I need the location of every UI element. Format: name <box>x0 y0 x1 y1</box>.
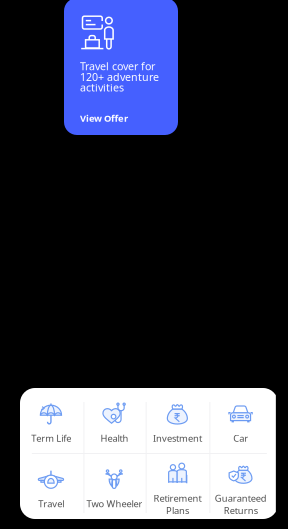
staticText: 120+ adventure <box>80 70 159 84</box>
staticText: Term Life <box>31 432 71 444</box>
staticText: Travel cover for <box>80 59 155 73</box>
button[interactable]: Guaranteed Returns <box>209 453 272 519</box>
button[interactable]: View Offer <box>80 106 138 130</box>
staticText: Health <box>100 432 128 444</box>
staticText: Travel <box>38 497 64 510</box>
button[interactable]: Retirement Plans <box>146 453 209 519</box>
button[interactable]: Travel <box>19 453 82 519</box>
staticText: View Offer <box>80 112 128 124</box>
button[interactable]: Investment <box>146 388 209 453</box>
staticText: Retirement Plans <box>153 492 201 517</box>
staticText: activities <box>80 80 124 94</box>
button[interactable]: Term Life <box>19 388 82 453</box>
staticText: Investment <box>153 432 202 444</box>
staticText: Car <box>233 432 248 444</box>
staticText: Two Wheeler <box>86 497 142 510</box>
staticText: Guaranteed Returns <box>215 492 267 517</box>
button[interactable]: Car <box>209 388 272 453</box>
button[interactable]: Two Wheeler <box>82 453 146 519</box>
button[interactable]: Health <box>82 388 146 453</box>
